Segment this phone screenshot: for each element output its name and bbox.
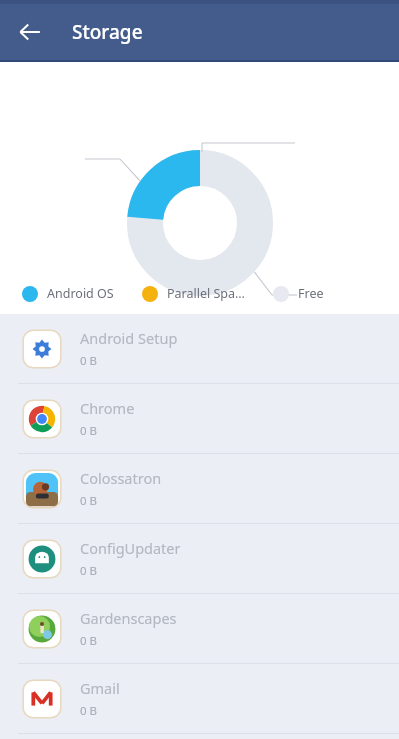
staticText: 0 B <box>80 703 98 719</box>
button[interactable]: Gmail <box>0 664 399 733</box>
button[interactable]: Chrome <box>0 384 399 453</box>
staticText: 0 B <box>80 633 98 649</box>
button[interactable]: Parallel Spa… <box>142 285 245 302</box>
button[interactable]: Gardenscapes <box>0 594 399 663</box>
button[interactable]: Android OS <box>22 285 114 302</box>
staticText: 0 B <box>80 353 98 369</box>
staticText: Gmail <box>80 678 120 698</box>
staticText: 0 B <box>80 563 98 579</box>
staticText: 0 B <box>80 423 98 439</box>
staticText: Colossatron <box>80 468 162 488</box>
button[interactable]: Android Setup <box>0 314 399 383</box>
button[interactable]: ConfigUpdater <box>0 524 399 593</box>
staticText: ConfigUpdater <box>80 538 181 558</box>
staticText: Parallel Spa… <box>167 285 245 302</box>
staticText: Free <box>298 285 324 302</box>
staticText: Gardenscapes <box>80 608 177 628</box>
button[interactable]: Free <box>273 285 324 302</box>
staticText: Android Setup <box>80 328 178 348</box>
button[interactable]: Back <box>8 10 52 54</box>
button[interactable]: Colossatron <box>0 454 399 523</box>
staticText: Storage <box>72 19 143 45</box>
staticText: 0 B <box>80 493 98 509</box>
staticText: Android OS <box>47 285 114 302</box>
staticText: Chrome <box>80 398 135 418</box>
